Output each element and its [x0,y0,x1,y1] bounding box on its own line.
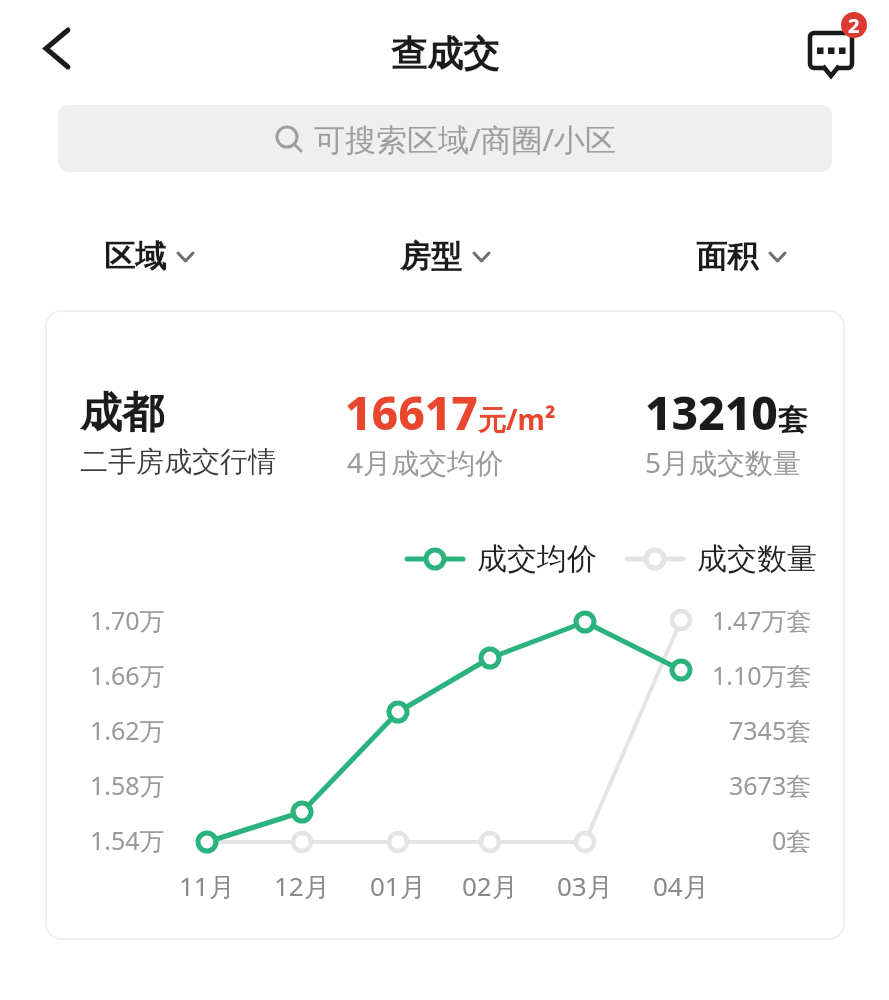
staticText: 成都 [80,387,164,440]
staticText: 02月 [462,868,518,904]
staticText: 区域 [104,237,166,276]
staticText: 1.47万套 [712,603,812,637]
staticText: 成交数量 [697,540,817,578]
staticText: 面积 [696,237,758,276]
staticText: 1.62万 [90,713,165,747]
staticText: 查成交 [391,31,499,76]
button[interactable] [28,20,84,76]
staticText: 成交均价 [477,540,597,578]
staticText: 元/m² [478,400,556,438]
staticText: 5月成交数量 [645,443,802,481]
staticText: 3673套 [729,768,812,802]
staticText: 01月 [370,868,426,904]
staticText: 1.58万 [90,768,165,802]
button[interactable]: 可搜索区域/商圈/小区 [58,105,832,172]
staticText: 03月 [557,868,613,904]
staticText: 11月 [179,868,235,904]
staticText: 12月 [274,868,330,904]
button[interactable]: 区域 [104,237,194,276]
staticText: 房型 [400,237,462,276]
staticText: 1.70万 [90,603,165,637]
staticText: 1.66万 [90,658,165,692]
staticText: 4月成交均价 [347,443,504,481]
button[interactable]: 面积 [696,237,786,276]
staticText: 1.10万套 [712,658,812,692]
staticText: 2 [848,12,860,39]
staticText: 16617 [345,381,478,444]
staticText: 1.54万 [90,823,165,857]
button[interactable]: 房型 [400,237,490,276]
staticText: 13210 [645,381,778,444]
button[interactable]: 2 [798,6,872,82]
staticText: 可搜索区域/商圈/小区 [314,118,617,160]
staticText: 套 [778,401,808,439]
staticText: 7345套 [729,713,812,747]
staticText: 0套 [772,823,812,857]
staticText: 二手房成交行情 [80,444,276,479]
staticText: 04月 [653,868,709,904]
